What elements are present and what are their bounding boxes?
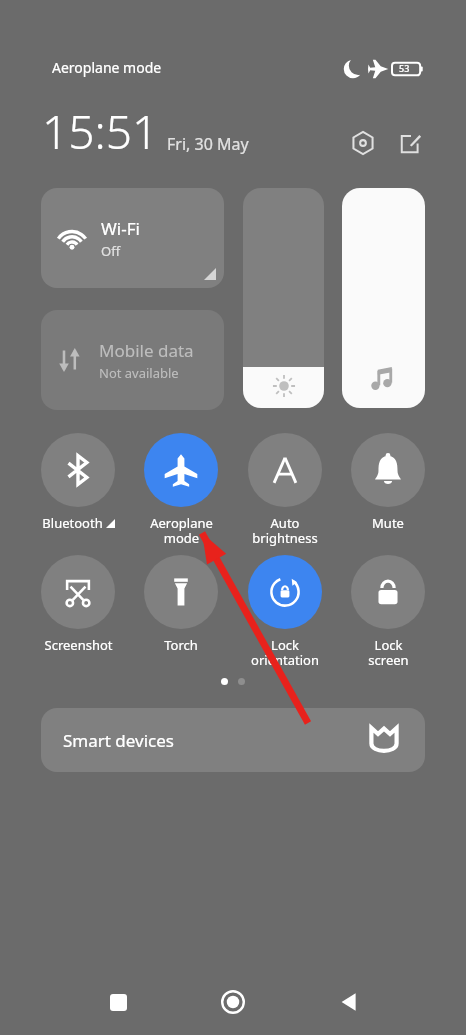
- button[interactable]: Back: [326, 980, 370, 1024]
- staticText: 53: [399, 62, 410, 74]
- button[interactable]: Torch: [135, 555, 227, 654]
- staticText: Aeroplane mode: [150, 514, 213, 547]
- button[interactable]: Auto brightness: [239, 433, 331, 547]
- staticText: Smart devices: [63, 729, 174, 752]
- staticText: Lock orientation: [251, 636, 319, 669]
- staticText: Mute: [372, 514, 404, 532]
- button[interactable]: Mute: [342, 433, 434, 532]
- button[interactable]: Mobile data: [41, 310, 224, 410]
- button[interactable]: Volume: [342, 188, 425, 408]
- button[interactable]: Screenshot: [32, 555, 124, 654]
- button[interactable]: Edit: [394, 126, 428, 160]
- button[interactable]: Brightness: [243, 188, 324, 408]
- staticText: Mobile data: [99, 339, 194, 362]
- button[interactable]: Recent apps: [96, 980, 140, 1024]
- staticText: Off: [101, 242, 121, 260]
- staticText: Wi-Fi: [101, 217, 140, 240]
- staticText: Bluetooth: [42, 514, 103, 532]
- button[interactable]: Aeroplane mode: [135, 433, 227, 547]
- button[interactable]: Settings: [346, 126, 380, 160]
- staticText: Not available: [99, 364, 179, 382]
- staticText: Fri, 30 May: [167, 133, 249, 155]
- staticText: Screenshot: [44, 636, 113, 654]
- staticText: Torch: [164, 636, 198, 654]
- button[interactable]: Lock screen: [342, 555, 434, 669]
- staticText: 15:51: [42, 100, 159, 163]
- button[interactable]: Bluetooth: [32, 433, 124, 532]
- button[interactable]: Lock orientation: [239, 555, 331, 669]
- staticText: Lock screen: [368, 636, 409, 669]
- button[interactable]: Home: [211, 980, 255, 1024]
- button[interactable]: Smart devices: [41, 708, 425, 772]
- button[interactable]: Wi-Fi: [41, 188, 224, 288]
- staticText: Auto brightness: [252, 514, 318, 547]
- staticText: Aeroplane mode: [52, 58, 162, 77]
